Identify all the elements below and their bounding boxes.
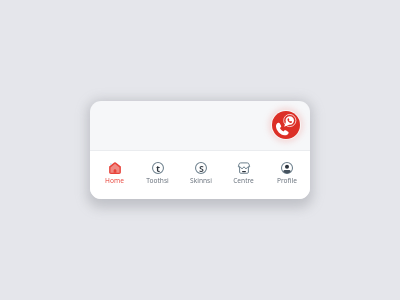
staticText: Profile xyxy=(277,176,297,185)
button[interactable]: t xyxy=(136,151,179,199)
staticText: S xyxy=(199,162,204,174)
staticText: Skinnsi xyxy=(190,176,212,185)
staticText: Home xyxy=(105,176,124,185)
button[interactable]: Call us on WhatsApp xyxy=(272,111,300,139)
button[interactable]: Centre xyxy=(222,151,265,199)
button[interactable]: S xyxy=(179,151,222,199)
button[interactable]: Home xyxy=(93,151,136,199)
staticText: t xyxy=(156,162,161,174)
button[interactable]: Profile xyxy=(265,151,308,199)
staticText: Centre xyxy=(233,176,254,185)
staticText: Toothsi xyxy=(146,176,169,185)
